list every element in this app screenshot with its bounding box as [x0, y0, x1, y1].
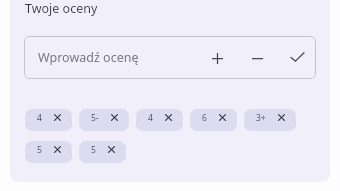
button[interactable]: Wprowadź ocenę [24, 36, 316, 79]
button[interactable]: 4 [136, 109, 183, 131]
staticText: Twoje oceny [25, 0, 98, 17]
button[interactable]: 3+ [244, 109, 296, 131]
button[interactable]: Usuń ocenę 4 [165, 114, 172, 121]
staticText: 5- [91, 112, 99, 124]
button[interactable]: 5- [79, 109, 129, 131]
button[interactable]: Usuń ocenę 4 [54, 114, 61, 121]
button[interactable]: Usuń ocenę 6 [219, 114, 226, 121]
button[interactable]: Zwiększ ocenę [205, 46, 229, 70]
staticText: 4 [148, 112, 153, 124]
button[interactable]: 4 [25, 109, 72, 131]
button[interactable]: Zatwierdź [285, 46, 309, 70]
staticText: 4 [37, 112, 42, 124]
button[interactable]: Usuń ocenę 5 [54, 146, 61, 153]
button[interactable]: 5 [79, 141, 126, 163]
button[interactable]: 5 [25, 141, 72, 163]
button[interactable]: Usuń ocenę 5 [108, 146, 115, 153]
button[interactable]: 6 [190, 109, 237, 131]
button[interactable]: Zmniejsz ocenę [245, 46, 269, 70]
staticText: 5 [37, 144, 42, 156]
button[interactable]: Usuń ocenę 3+ [278, 114, 285, 121]
button[interactable]: Usuń ocenę 5- [111, 114, 118, 121]
staticText: 6 [202, 112, 207, 124]
staticText: Wprowadź ocenę [38, 49, 139, 66]
staticText: 3+ [256, 112, 266, 124]
staticText: 5 [91, 144, 96, 156]
